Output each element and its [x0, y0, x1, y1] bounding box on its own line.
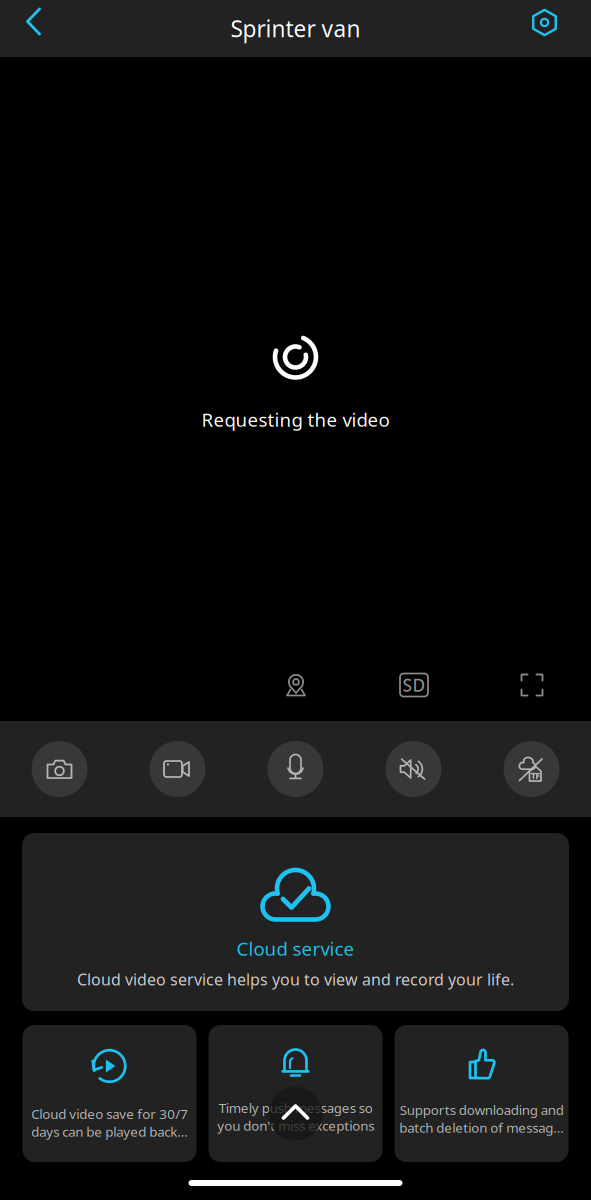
button[interactable]: Snapshot [0, 721, 118, 817]
button[interactable]: Back [0, 0, 68, 57]
button[interactable]: Settings [498, 0, 591, 57]
button[interactable]: Timely push messages so you don't miss e… [208, 1025, 382, 1162]
button[interactable]: Mute [354, 721, 472, 817]
staticText: Cloud video save for 30/7 days can be pl… [31, 1105, 188, 1140]
staticText: Requesting the video [201, 407, 389, 432]
button[interactable]: Talk [236, 721, 354, 817]
staticText: Timely push messages so you don't miss e… [217, 1099, 374, 1134]
button[interactable]: Cloud video save for 30/7 days can be pl… [22, 1025, 196, 1162]
staticText: Cloud video service helps you to view an… [77, 969, 514, 990]
button[interactable]: Storage [472, 721, 590, 817]
button[interactable]: Cloud service [22, 833, 569, 1011]
button[interactable]: Supports downloading and batch deletion … [394, 1025, 568, 1162]
staticText: SD [402, 673, 425, 696]
button[interactable]: Record [118, 721, 236, 817]
staticText: Sprinter van [230, 13, 360, 43]
button[interactable]: Full screen [473, 660, 591, 710]
staticText: Supports downloading and batch deletion … [399, 1101, 564, 1136]
staticText: Cloud service [236, 936, 354, 961]
button[interactable]: Position [237, 660, 355, 710]
button[interactable]: Quality [355, 660, 473, 710]
